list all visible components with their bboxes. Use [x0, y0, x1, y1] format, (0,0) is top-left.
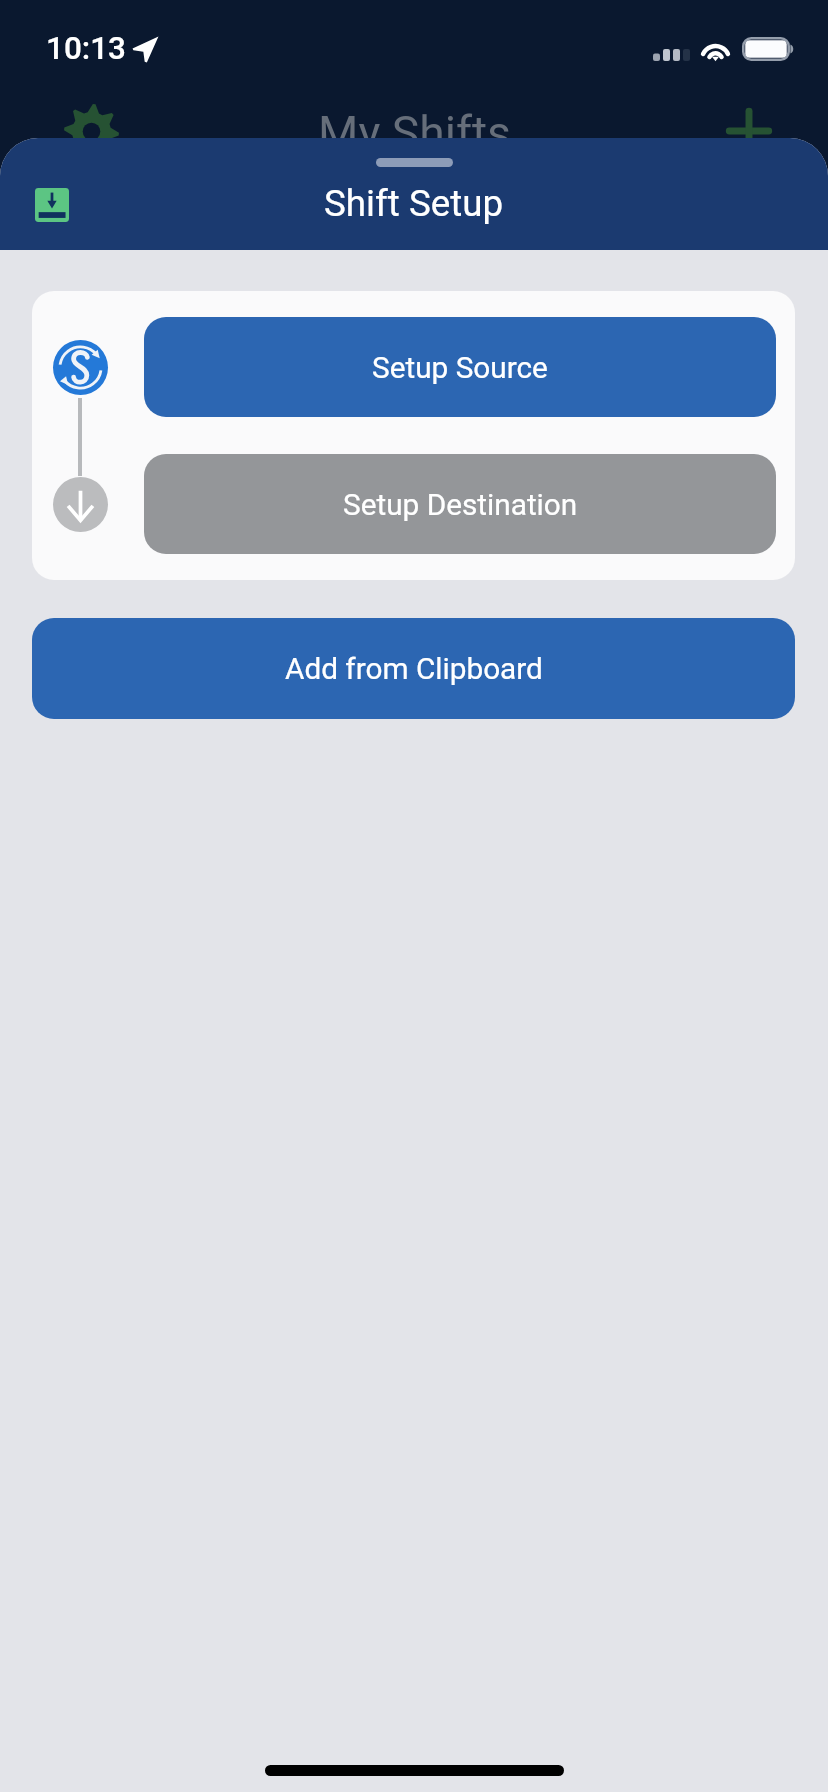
button[interactable]: Import shifts: [17, 170, 86, 239]
button[interactable]: Setup Destination: [144, 454, 776, 554]
staticText: My Shifts: [318, 106, 511, 160]
staticText: 10:13: [46, 30, 126, 67]
staticText: Setup Source: [372, 350, 548, 385]
button[interactable]: Add from Clipboard: [32, 618, 795, 719]
button[interactable]: Setup Source: [144, 317, 776, 417]
staticText: Add from Clipboard: [285, 651, 543, 686]
staticText: Shift Setup: [324, 182, 504, 225]
other: Settings: [64, 104, 119, 159]
other: Add shift: [725, 107, 773, 155]
staticText: Setup Destination: [343, 487, 578, 522]
